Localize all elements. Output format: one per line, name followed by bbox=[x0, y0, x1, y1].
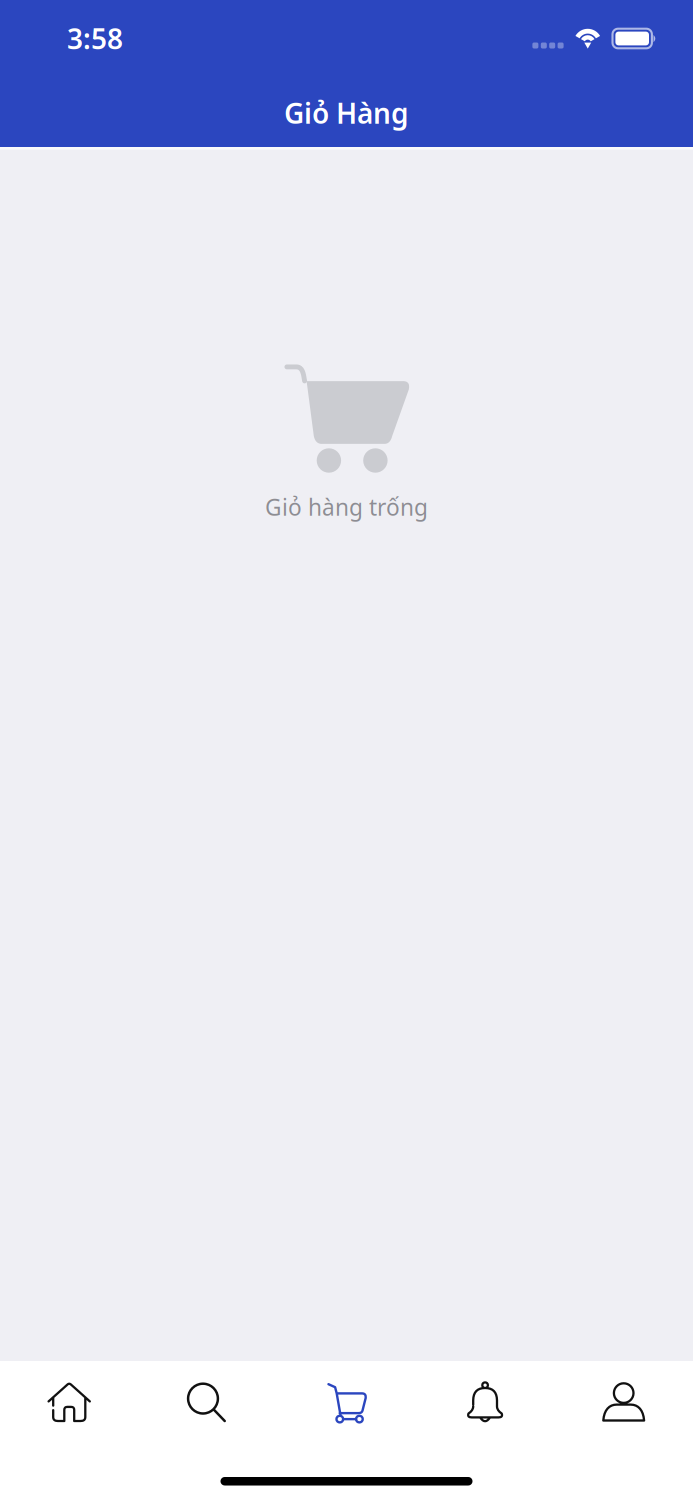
button[interactable]: Search bbox=[139, 1361, 277, 1437]
button[interactable]: Home bbox=[0, 1361, 139, 1437]
staticText: Giỏ Hàng bbox=[284, 94, 409, 132]
button[interactable]: Profile bbox=[554, 1361, 693, 1437]
button[interactable]: Cart bbox=[277, 1361, 416, 1437]
staticText: Giỏ hàng trống bbox=[265, 492, 428, 522]
staticText: 3:58 bbox=[67, 20, 123, 57]
button[interactable]: Notifications bbox=[416, 1361, 554, 1437]
